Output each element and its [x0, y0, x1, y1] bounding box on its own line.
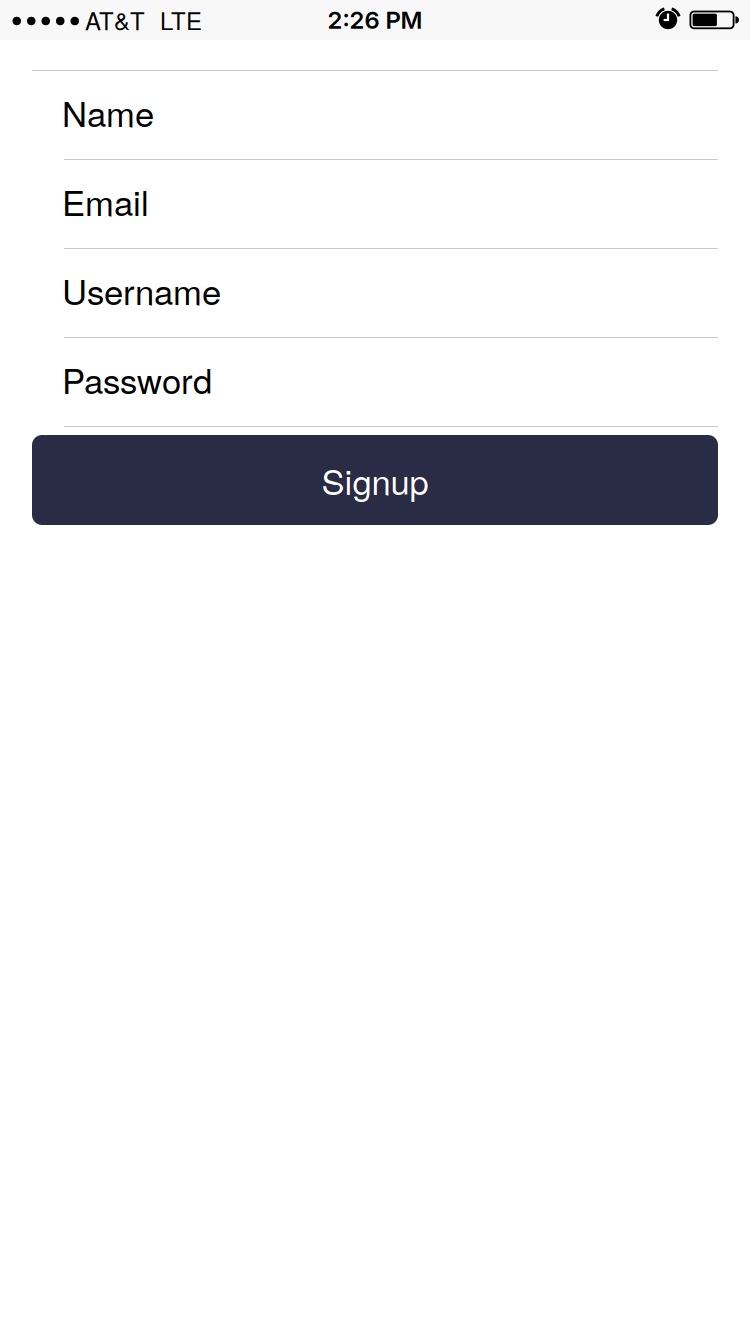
button[interactable]: Name [0, 71, 750, 160]
staticText: Name [62, 87, 154, 137]
staticText: Password [62, 354, 212, 404]
button[interactable]: Signup [32, 435, 718, 525]
staticText: Email [62, 176, 149, 226]
staticText: 2:26 PM [327, 5, 422, 34]
button[interactable]: Email [0, 160, 750, 249]
staticText: Username [62, 265, 221, 315]
button[interactable]: Password [0, 338, 750, 427]
staticText: Signup [321, 455, 428, 505]
staticText: LTE [160, 3, 202, 37]
button[interactable]: Username [0, 249, 750, 338]
staticText: AT&T [85, 3, 145, 37]
